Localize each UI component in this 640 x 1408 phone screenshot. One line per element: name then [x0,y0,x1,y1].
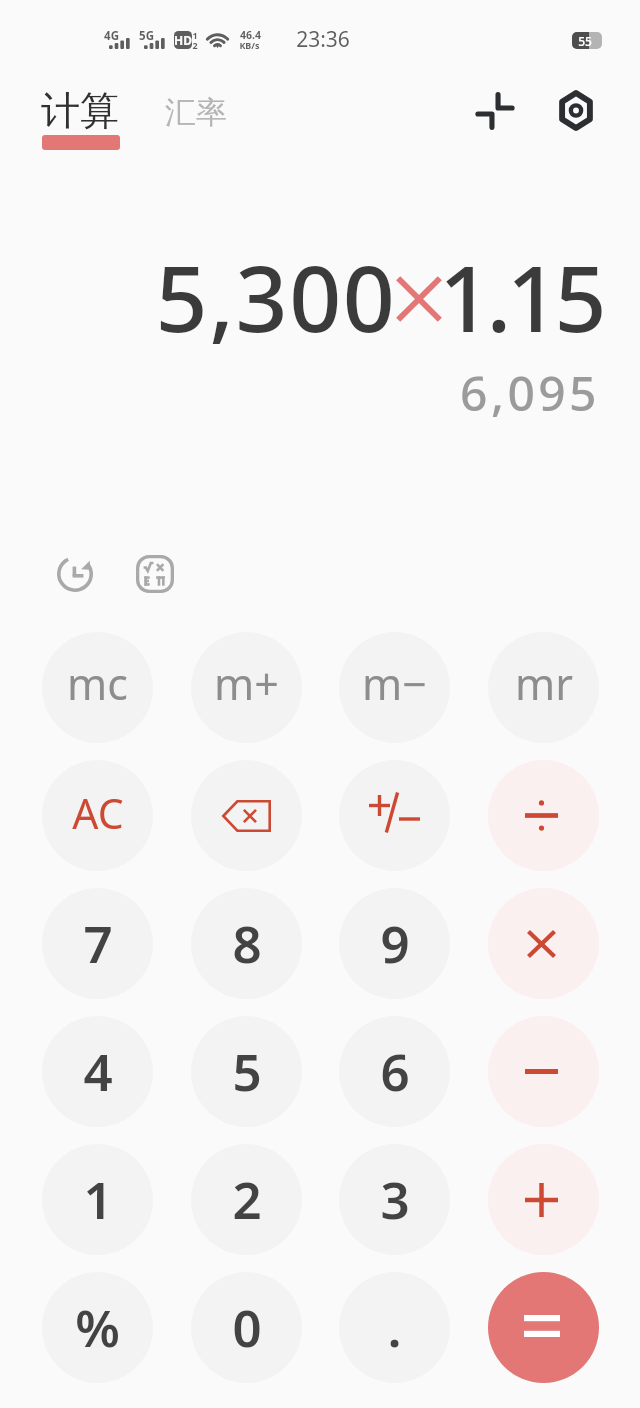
staticText: 46.4 [240,28,261,42]
button[interactable]: mc [42,632,153,743]
staticText: 6 [380,1036,410,1105]
button[interactable]: Scientific [126,545,183,602]
staticText: 汇率 [165,93,227,132]
button[interactable] [488,1144,599,1255]
staticText: % [75,1292,120,1361]
button[interactable]: 汇率 [163,91,229,134]
button[interactable]: 9 [339,888,450,999]
staticText: 5 [232,1036,262,1105]
button[interactable]: 7 [42,888,153,999]
staticText: 2 [232,1164,262,1233]
staticText: 2 [192,39,198,51]
button[interactable]: 计算 [39,84,121,152]
other: Delete [222,800,271,832]
staticText: 5,300 [155,235,397,359]
staticText: 1 [83,1164,113,1233]
staticText: AC [72,785,124,841]
staticText: 8 [232,908,262,977]
button[interactable]: mr [488,632,599,743]
button[interactable]: History [46,545,103,602]
other: Plus minus [369,792,420,833]
staticText: 55 [578,33,592,49]
button[interactable]: 1 [42,1144,153,1255]
staticText: 计算 [41,86,119,135]
button[interactable]: 8 [191,888,302,999]
button[interactable]: m+ [191,632,302,743]
staticText: 3 [380,1164,410,1233]
button[interactable] [488,888,599,999]
staticText: 1 [192,29,198,41]
button[interactable]: Collapse [466,82,524,140]
staticText: HD [174,32,192,48]
button[interactable]: 5 [191,1016,302,1127]
staticText: m− [362,654,427,713]
staticText: 4 [83,1036,113,1105]
button[interactable]: 0 [191,1272,302,1383]
button[interactable] [488,1272,599,1383]
button[interactable]: m− [339,632,450,743]
button[interactable]: Delete [191,760,302,871]
button[interactable]: 6 [339,1016,450,1127]
staticText: m+ [214,654,279,713]
staticText: mr [515,654,573,713]
button[interactable] [488,760,599,871]
staticText: mc [67,654,128,713]
staticText: 23:36 [296,25,350,54]
staticText: 4G [104,28,119,44]
button[interactable]: 2 [191,1144,302,1255]
staticText: 5G [139,28,154,44]
staticText: 9 [380,908,410,977]
staticText: 1.15 [439,235,602,359]
button[interactable]: . [339,1272,450,1383]
button[interactable]: 3 [339,1144,450,1255]
button[interactable]: AC [42,760,153,871]
button[interactable]: Plus minus [339,760,450,871]
button[interactable]: Settings [547,81,605,139]
button[interactable] [488,1016,599,1127]
staticText: 7 [83,908,113,977]
staticText: KB/s [239,39,260,51]
staticText: 6,095 [460,360,600,425]
button[interactable]: 4 [42,1016,153,1127]
button[interactable]: % [42,1272,153,1383]
staticText: . [387,1292,402,1361]
staticText: 0 [232,1292,262,1361]
